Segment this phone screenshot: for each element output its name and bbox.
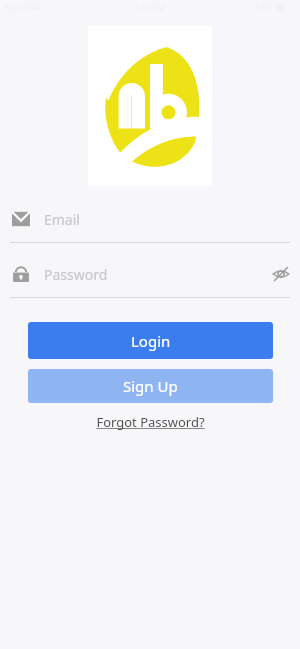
button[interactable]: Password <box>0 257 300 291</box>
button[interactable]: Sign Up <box>28 369 273 403</box>
staticText: Email <box>44 210 290 229</box>
button[interactable]: Toggle password visibility <box>272 265 290 283</box>
button[interactable]: Login <box>28 322 273 359</box>
button[interactable]: Forgot Password? <box>88 411 213 433</box>
staticText: Login <box>131 331 171 351</box>
button[interactable]: Email <box>0 202 300 236</box>
staticText: Forgot Password? <box>96 413 205 431</box>
staticText: Sign Up <box>123 376 178 396</box>
other: Password <box>12 265 30 283</box>
staticText: Password <box>44 265 272 284</box>
other: Email <box>12 210 30 228</box>
